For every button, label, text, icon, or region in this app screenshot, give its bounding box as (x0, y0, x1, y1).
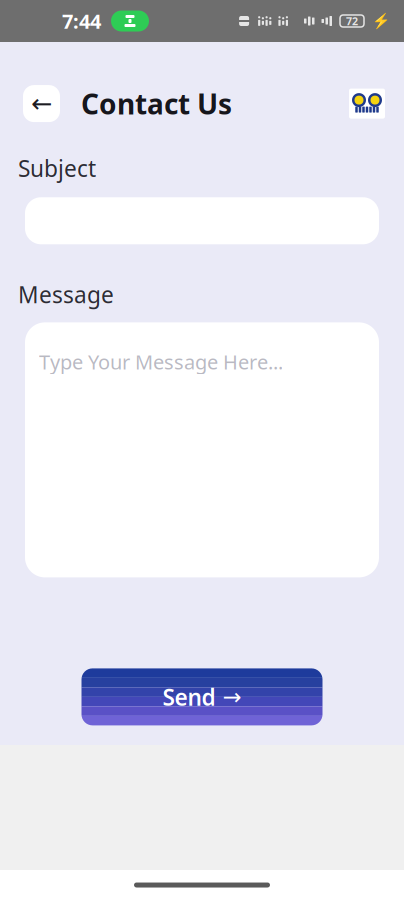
staticText: ← (31, 89, 52, 118)
staticText: Message (18, 279, 114, 309)
staticText: Subject (18, 153, 96, 183)
button[interactable]: Back (23, 85, 60, 122)
button[interactable]: Send (81, 668, 322, 725)
staticText: ⚡ (372, 13, 390, 29)
staticText: 7:44 (62, 8, 101, 34)
staticText: Send (162, 682, 215, 712)
staticText: 72 (346, 14, 358, 28)
staticText: Contact Us (81, 85, 232, 122)
staticText: → (222, 684, 241, 710)
staticText: Type Your Message Here... (39, 348, 283, 375)
